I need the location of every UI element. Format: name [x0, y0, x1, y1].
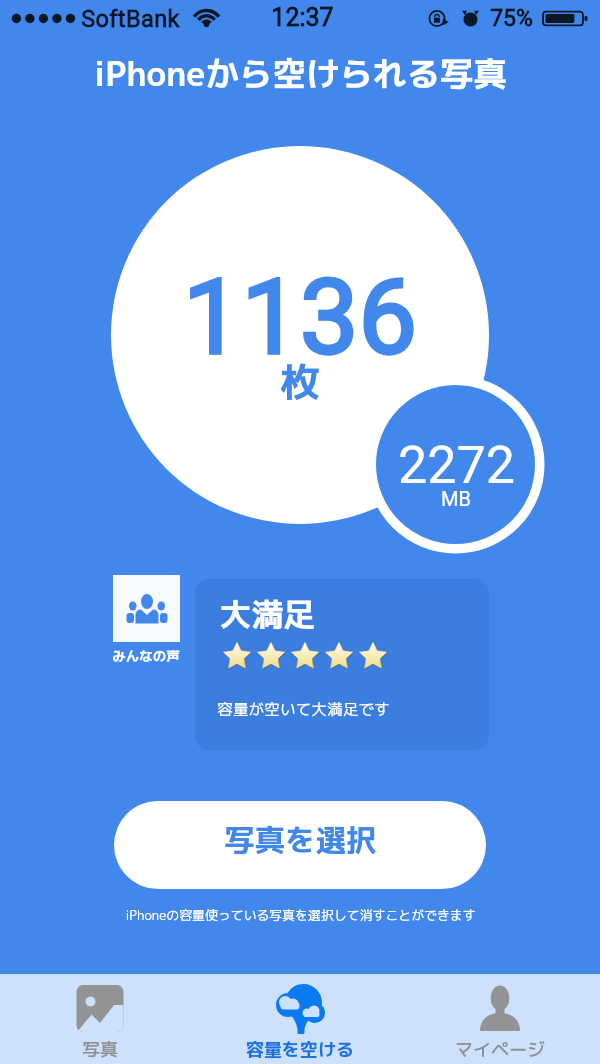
staticText: 写真: [82, 1037, 118, 1062]
button[interactable]: 容量を空ける: [200, 974, 400, 1064]
staticText: 写真を選択: [224, 818, 377, 861]
staticText: 1136: [183, 257, 417, 379]
button[interactable]: 大満足: [195, 579, 489, 750]
staticText: 枚: [280, 354, 320, 409]
button[interactable]: マイページ: [400, 974, 600, 1064]
staticText: 2272: [398, 435, 515, 495]
staticText: 容量が空いて大満足です: [217, 698, 390, 720]
button[interactable]: みんなの声: [112, 575, 180, 665]
button[interactable]: 写真: [0, 974, 200, 1064]
staticText: 12:37: [271, 3, 334, 32]
staticText: iPhoneから空けられる写真: [94, 50, 507, 94]
staticText: 容量を空ける: [246, 1037, 354, 1062]
staticText: iPhoneの容量使っている写真を選択して消すことができます: [125, 906, 476, 924]
staticText: MB: [441, 487, 471, 510]
staticText: SoftBank: [81, 5, 180, 33]
staticText: 75%: [490, 5, 533, 32]
staticText: マイページ: [455, 1037, 545, 1062]
button[interactable]: 写真を選択: [114, 801, 486, 889]
staticText: 大満足: [219, 592, 316, 637]
staticText: みんなの声: [112, 646, 180, 665]
